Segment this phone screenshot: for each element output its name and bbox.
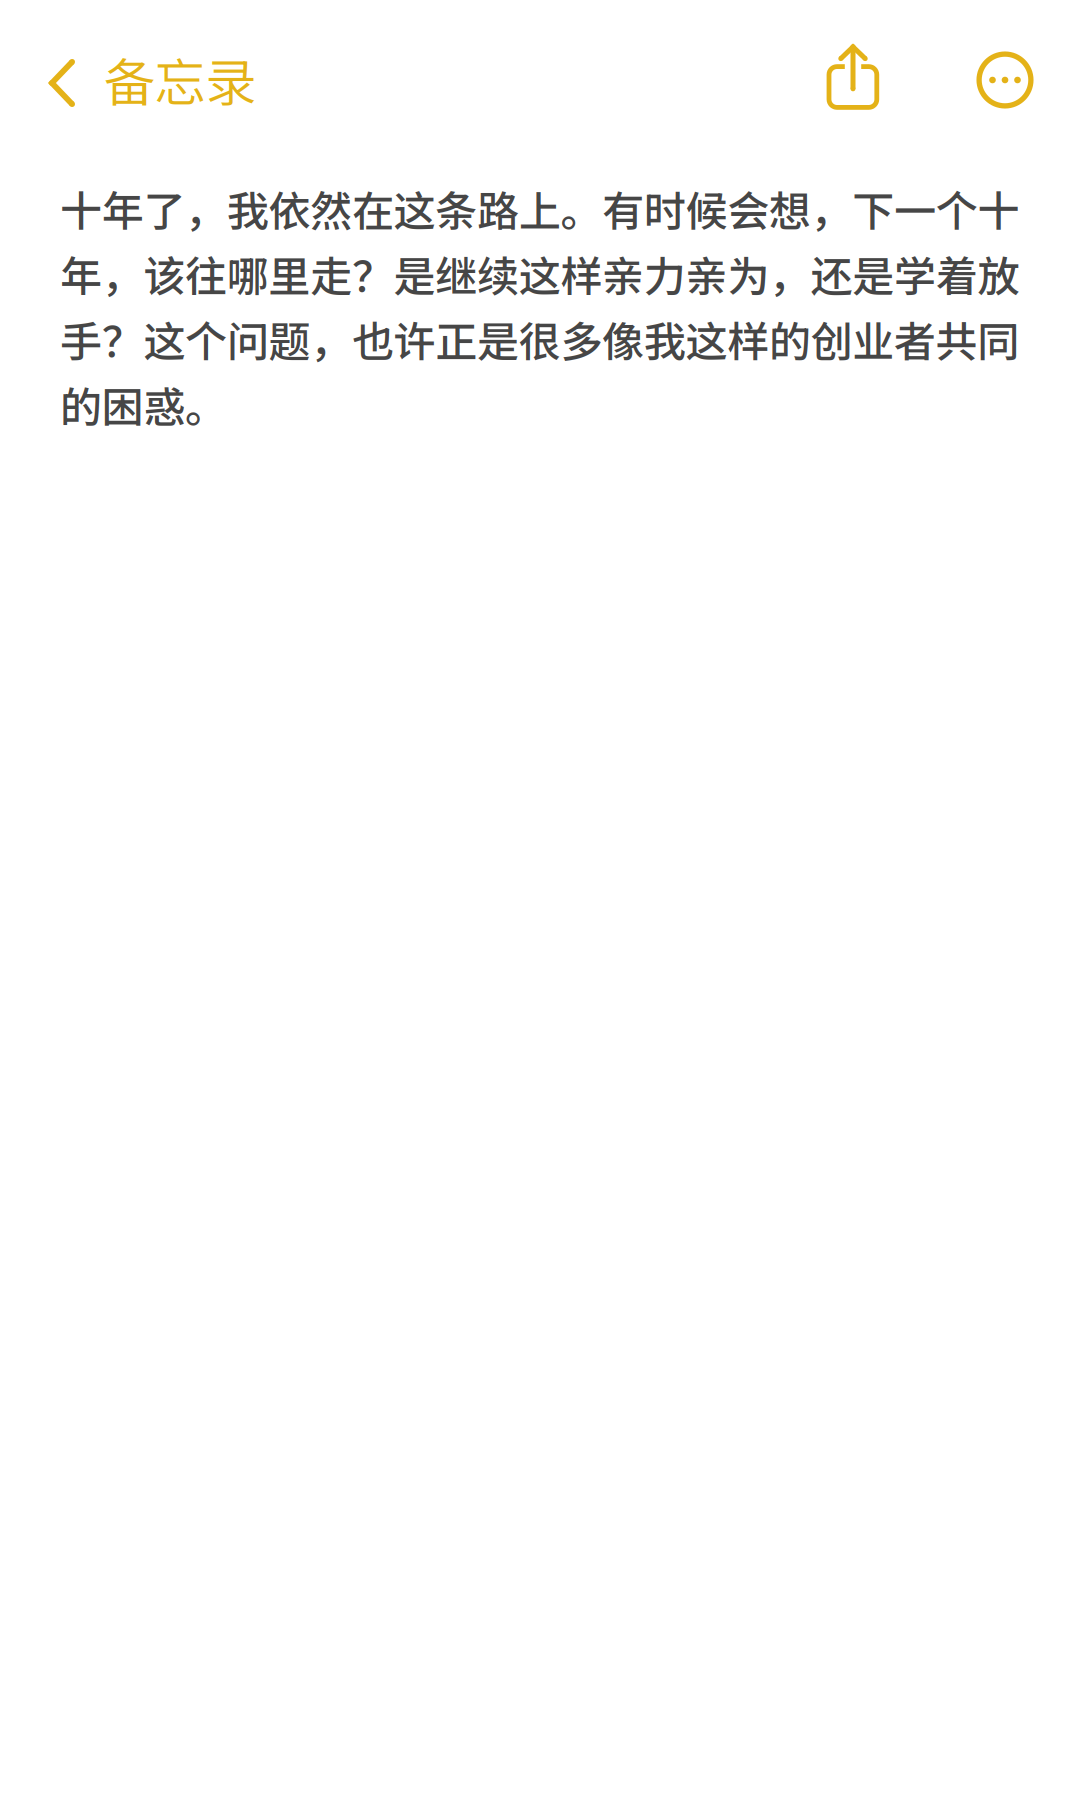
button[interactable]: 分享	[804, 28, 900, 132]
staticText: 十年了，我依然在这条路上。有时候会想，下一个十年，该往哪里走？是继续这样亲力亲为…	[60, 178, 1019, 435]
staticText: 备忘录	[104, 42, 256, 116]
button[interactable]: 备忘录	[33, 27, 303, 131]
button[interactable]: 更多	[957, 28, 1053, 132]
